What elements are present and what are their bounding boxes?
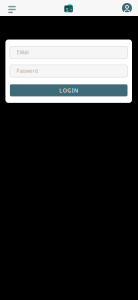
staticText: E-Mail — [16, 50, 28, 56]
button[interactable]: Password — [10, 65, 127, 77]
staticText: Password — [16, 68, 38, 74]
staticText: S — [66, 6, 69, 13]
button[interactable]: LOGIN — [10, 84, 127, 96]
button[interactable]: Menu — [4, 0, 20, 16]
button[interactable]: Wallet — [61, 0, 77, 16]
button[interactable]: Account — [119, 0, 135, 16]
staticText: LOGIN — [59, 87, 78, 94]
button[interactable]: E-Mail — [10, 46, 127, 59]
